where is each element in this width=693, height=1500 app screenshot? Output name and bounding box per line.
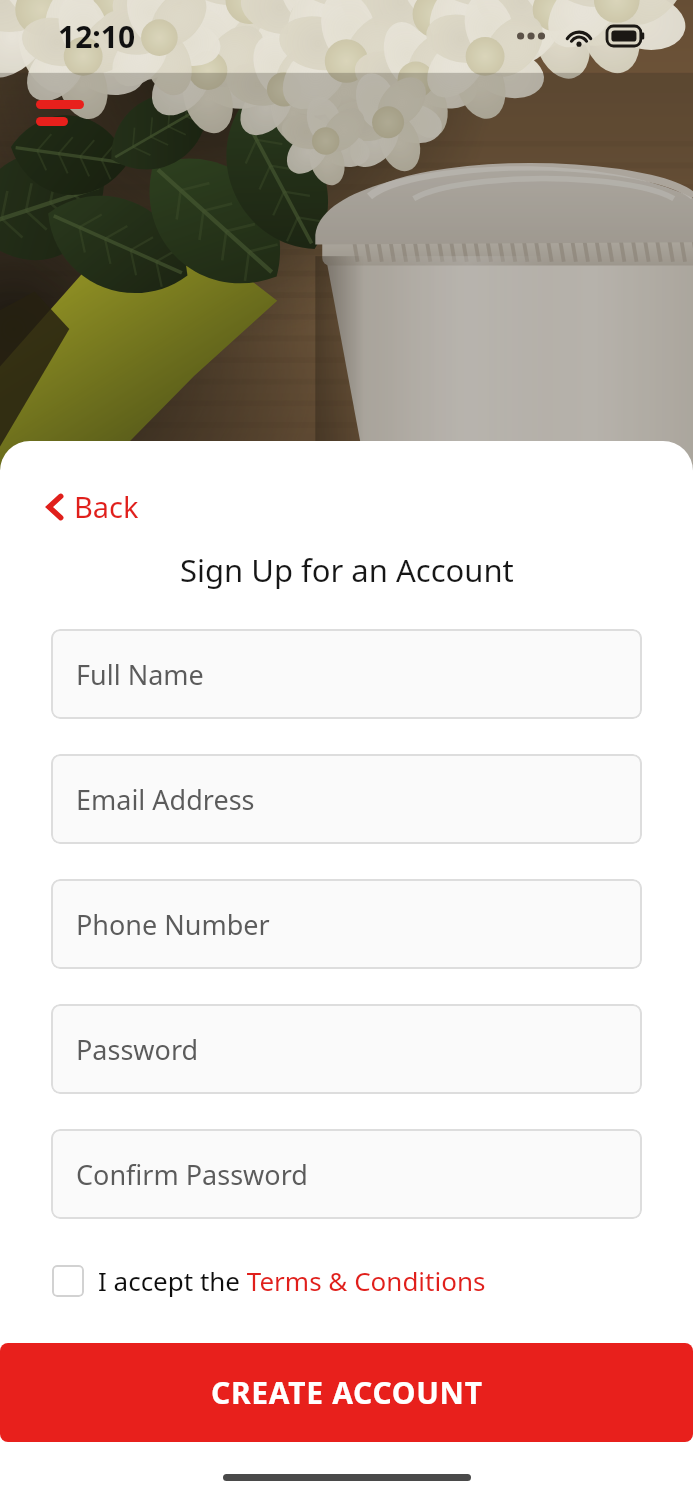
staticText: CREATE ACCOUNT	[211, 1372, 483, 1413]
staticText: I accept the Terms & Conditions	[98, 1263, 486, 1298]
staticText: Email Address	[76, 781, 255, 818]
button[interactable]: Confirm Password	[51, 1129, 642, 1219]
button[interactable]: Back	[38, 481, 147, 532]
button[interactable]: Email Address	[51, 754, 642, 844]
button[interactable]: I accept the Terms & Conditions	[45, 1259, 486, 1302]
staticText: Sign Up for an Account	[180, 549, 514, 591]
button[interactable]: Password	[51, 1004, 642, 1094]
staticText: Back	[74, 487, 139, 526]
staticText: 12:10	[58, 16, 136, 57]
staticText: Phone Number	[76, 906, 270, 943]
button[interactable]: Open menu	[28, 88, 92, 136]
staticText: Password	[76, 1031, 199, 1068]
staticText: Confirm Password	[76, 1156, 308, 1193]
button[interactable]: CREATE ACCOUNT	[0, 1343, 693, 1442]
button[interactable]: Full Name	[51, 629, 642, 719]
button[interactable]: Phone Number	[51, 879, 642, 969]
staticText: Full Name	[76, 656, 204, 693]
